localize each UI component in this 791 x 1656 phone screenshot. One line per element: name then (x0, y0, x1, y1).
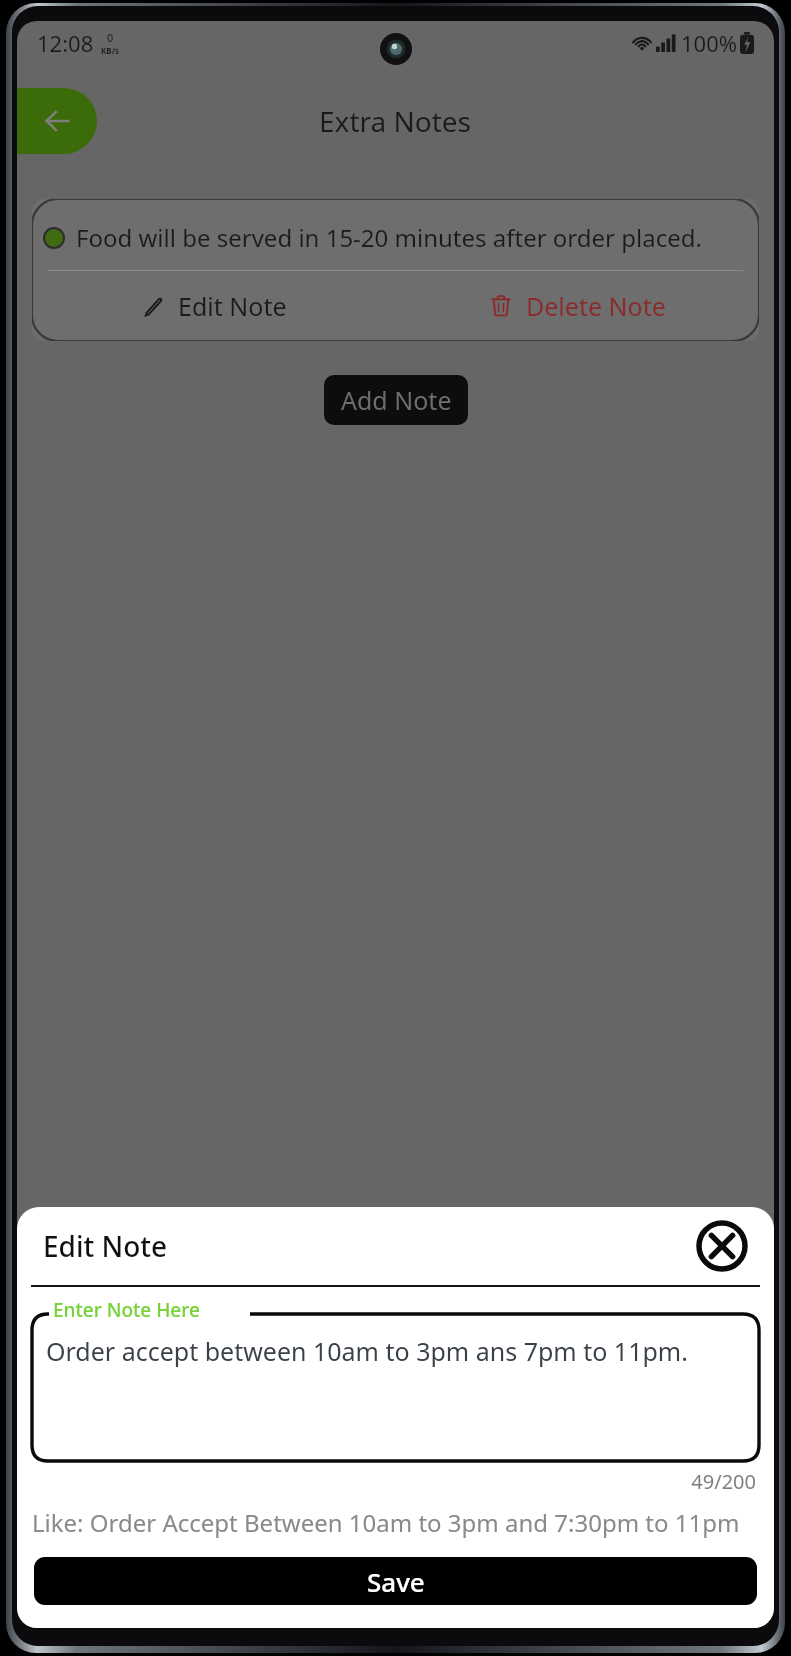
staticText: Delete Note (526, 289, 666, 323)
staticText: Edit Note (43, 1227, 168, 1265)
button[interactable]: Save (34, 1557, 757, 1605)
staticText: Enter Note Here (53, 1297, 200, 1323)
staticText: Extra Notes (319, 102, 472, 140)
staticText: Like: Order Accept Between 10am to 3pm a… (32, 1506, 759, 1539)
button[interactable]: Close (696, 1220, 748, 1272)
button[interactable]: Edit Note (32, 279, 395, 333)
staticText: KB/s (101, 45, 119, 56)
button[interactable]: Back (17, 88, 97, 154)
staticText: Food will be served in 15-20 minutes aft… (76, 221, 702, 254)
staticText: Save (367, 1564, 425, 1599)
staticText: Edit Note (178, 289, 287, 323)
staticText: Order accept between 10am to 3pm ans 7pm… (46, 1334, 745, 1368)
staticText: 49/200 (17, 1468, 756, 1495)
staticText: 0 (107, 30, 114, 45)
button[interactable]: Delete Note (395, 279, 759, 333)
staticText: 100% (681, 28, 738, 58)
button[interactable]: Add Note (324, 375, 468, 425)
staticText: Add Note (341, 383, 452, 417)
staticText: 12:08 (37, 28, 94, 58)
